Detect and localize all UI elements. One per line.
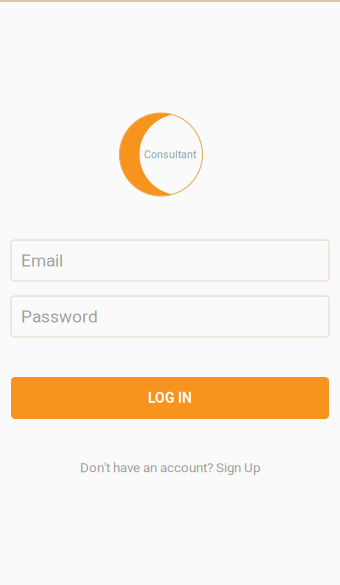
button[interactable]: Email — [11, 240, 329, 281]
button[interactable]: LOG IN — [11, 377, 329, 419]
button[interactable]: Don't have an account? Sign Up — [80, 460, 260, 476]
staticText: Consultant — [144, 148, 196, 161]
button[interactable]: Password — [11, 296, 329, 337]
staticText: Email — [21, 250, 63, 271]
staticText: Password — [21, 306, 98, 327]
staticText: LOG IN — [148, 390, 192, 406]
staticText: Don't have an account? Sign Up — [80, 460, 260, 476]
